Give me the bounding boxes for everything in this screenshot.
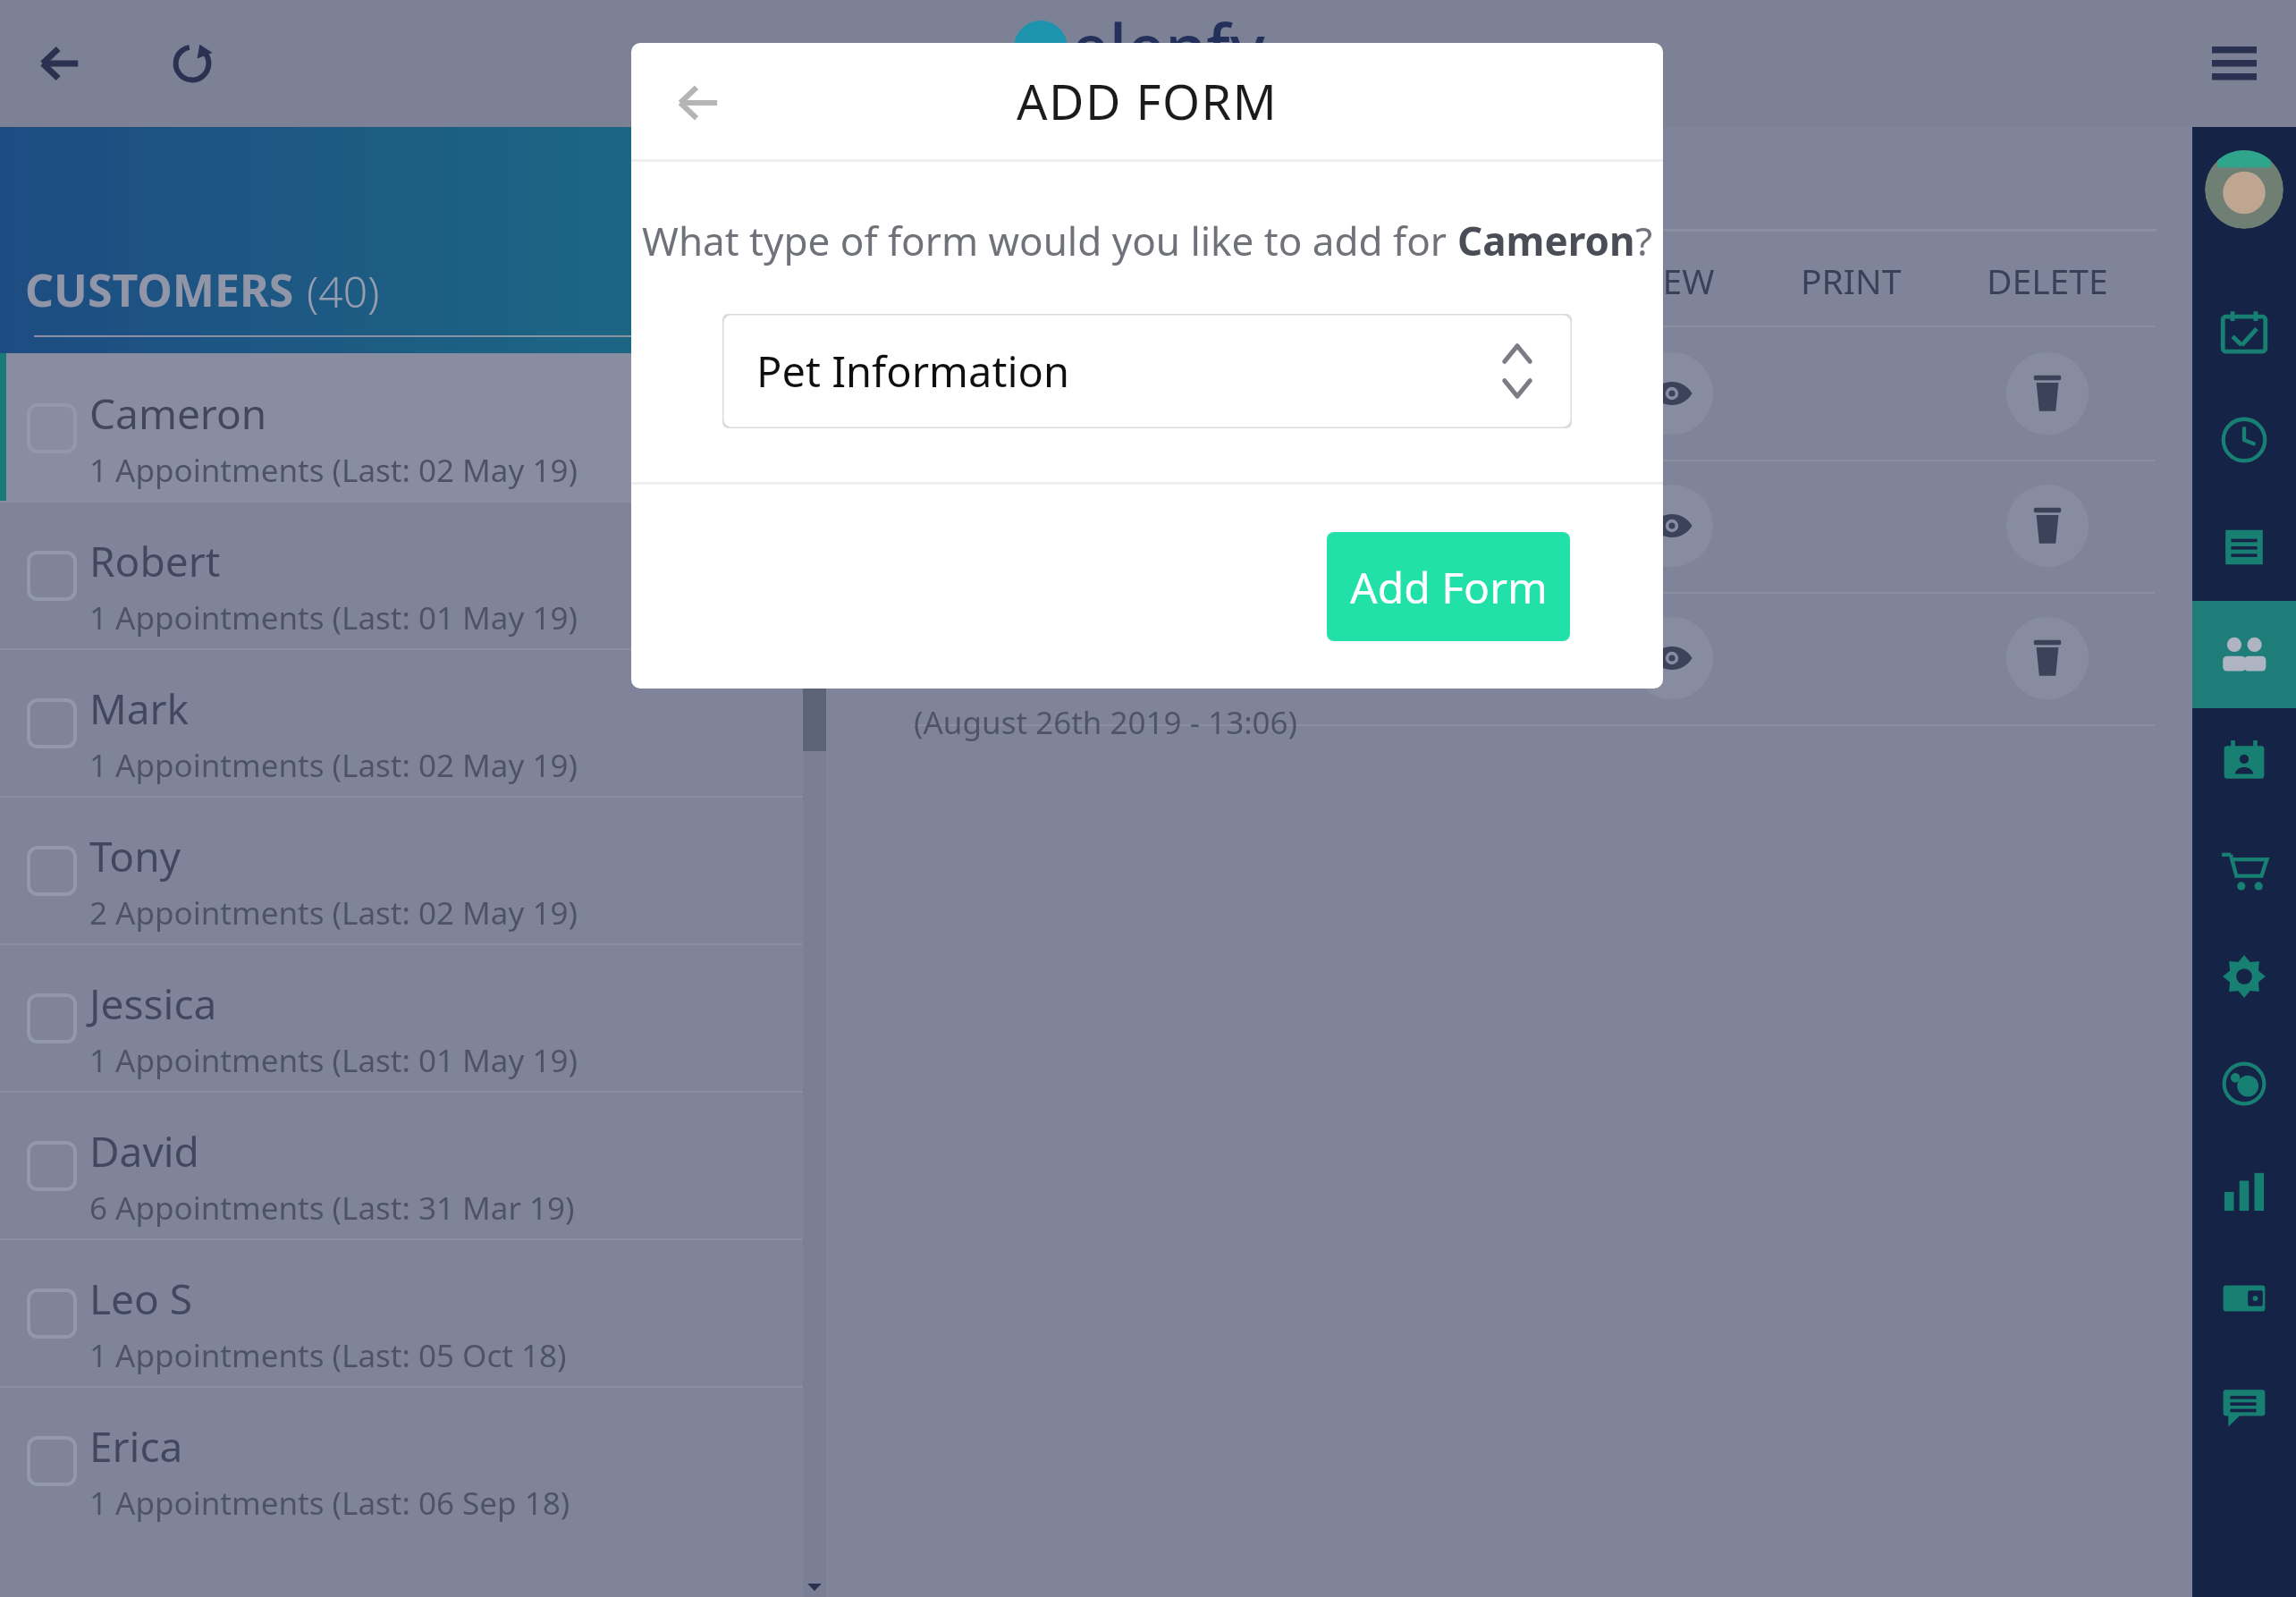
button[interactable]: Calendar: [2192, 279, 2296, 386]
button[interactable]: Invoices: [2192, 494, 2296, 601]
button[interactable]: Delete: [2006, 485, 2089, 567]
button[interactable]: Back: [669, 73, 728, 132]
button[interactable]: Reports: [2192, 1137, 2296, 1245]
button[interactable]: David: [0, 1091, 805, 1238]
staticText: Pet Information: [756, 342, 1070, 400]
button[interactable]: View: [1631, 617, 1713, 699]
staticText: Cameron: [89, 385, 267, 442]
staticText: Jessica: [89, 976, 217, 1032]
staticText: elenfy: [1071, 2, 1265, 92]
button[interactable]: Customers: [2192, 601, 2296, 708]
button[interactable]: Erica: [0, 1386, 805, 1534]
staticText: VIEW: [1630, 257, 1715, 304]
button[interactable]: Tony: [0, 796, 805, 943]
button[interactable]: Robert: [0, 501, 805, 648]
staticText: 1 Appointments (Last: 02 May 19): [89, 744, 578, 787]
button[interactable]: History: [2192, 386, 2296, 494]
button[interactable]: Cameron: [0, 353, 805, 501]
button[interactable]: Search for Customer: [34, 395, 839, 494]
staticText: 1 Appointments (Last: 06 Sep 18): [89, 1482, 570, 1525]
staticText: DELETE: [1987, 257, 2108, 304]
staticText: CUSTOMERS: [25, 259, 294, 320]
staticText: Mark: [89, 680, 190, 737]
staticText: (40): [307, 262, 380, 320]
staticText: PRINT: [1801, 257, 1902, 304]
button[interactable]: Mark: [0, 648, 805, 796]
button[interactable]: Profile: [2205, 150, 2283, 229]
staticText: 1 Appointments (Last: 02 May 19): [89, 449, 578, 492]
staticText: Robert: [89, 533, 221, 589]
staticText: Erica: [89, 1418, 183, 1474]
staticText: 1 Appointments (Last: 01 May 19): [89, 596, 578, 639]
button[interactable]: View: [1631, 352, 1713, 435]
button[interactable]: Website: [2192, 1030, 2296, 1137]
button[interactable]: Payments: [2192, 1245, 2296, 1352]
button[interactable]: Delete: [2006, 617, 2089, 699]
button[interactable]: Settings: [2192, 923, 2296, 1030]
button[interactable]: Leo S: [0, 1238, 805, 1386]
staticText: (August 26th 2019 - 13:06): [914, 701, 1298, 744]
button[interactable]: Pet Information: [722, 314, 1572, 428]
button[interactable]: Reload: [159, 30, 225, 97]
staticText: ADD FORM: [1017, 68, 1279, 134]
button[interactable]: Jessica: [0, 943, 805, 1091]
button[interactable]: Messages: [2192, 1352, 2296, 1459]
staticText: 2 Appointments (Last: 02 May 19): [89, 891, 578, 934]
staticText: David: [89, 1123, 199, 1179]
button[interactable]: Menu: [2196, 25, 2273, 102]
button[interactable]: DELETE: [1220, 150, 1369, 227]
staticText: Leo S: [89, 1271, 193, 1327]
staticText: 1 Appointments (Last: 05 Oct 18): [89, 1334, 567, 1377]
button[interactable]: Add Form: [1327, 532, 1570, 641]
staticText: 1 Appointments (Last: 01 May 19): [89, 1039, 578, 1082]
staticText: ?: [1635, 214, 1653, 267]
staticText: Add Form: [1350, 558, 1548, 616]
button[interactable]: Delete: [2006, 352, 2089, 435]
button[interactable]: LOG: [1095, 150, 1181, 227]
staticText: 6 Appointments (Last: 31 Mar 19): [89, 1187, 575, 1229]
staticText: Cameron: [1457, 214, 1635, 267]
button[interactable]: View: [1631, 485, 1713, 567]
staticText: What type of form would you like to add …: [642, 214, 1457, 267]
button[interactable]: Back: [27, 30, 93, 97]
button[interactable]: Store: [2192, 815, 2296, 923]
staticText: Search for Customer: [34, 420, 380, 469]
button[interactable]: Contacts: [2192, 708, 2296, 815]
staticText: Tony: [89, 828, 181, 884]
